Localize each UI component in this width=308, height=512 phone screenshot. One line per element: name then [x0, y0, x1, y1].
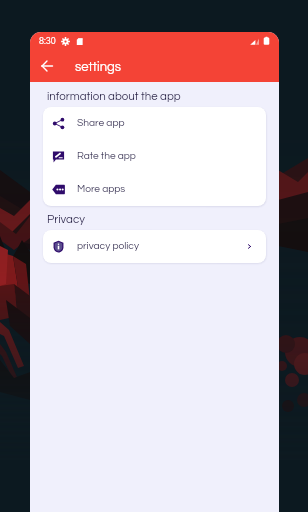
staticText: privacy policy: [77, 241, 139, 252]
staticText: Share app: [77, 118, 125, 129]
staticText: Rate the app: [77, 151, 136, 162]
button[interactable]: More apps: [43, 173, 266, 206]
staticText: Privacy: [47, 214, 85, 226]
staticText: More apps: [77, 184, 126, 195]
staticText: information about the app: [47, 91, 181, 103]
button[interactable]: Share app: [43, 107, 266, 140]
staticText: 8:30: [39, 37, 56, 46]
button[interactable]: privacy policy: [43, 230, 266, 263]
button[interactable]: Back: [34, 53, 60, 79]
button[interactable]: Rate the app: [43, 140, 266, 173]
staticText: settings: [75, 60, 122, 73]
